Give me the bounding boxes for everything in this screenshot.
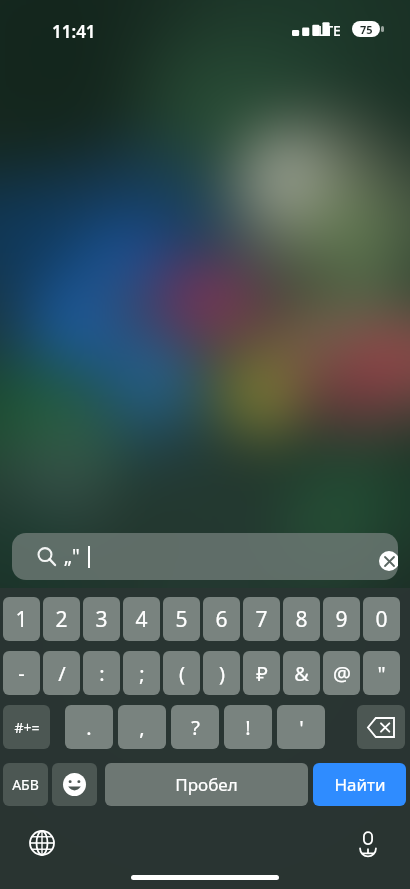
button[interactable]: 3 — [83, 597, 120, 641]
staticText: 9 — [335, 605, 348, 634]
button[interactable]: #+= — [3, 705, 50, 749]
button[interactable]: ? — [171, 705, 219, 749]
staticText: АБВ — [12, 775, 39, 794]
staticText: Пробел — [175, 773, 238, 796]
button[interactable]: 7 — [243, 597, 280, 641]
staticText: " — [377, 660, 386, 687]
staticText: & — [294, 660, 309, 687]
button[interactable]: Emoji — [52, 763, 97, 806]
staticText: ? — [191, 714, 200, 741]
button[interactable]: : — [83, 651, 120, 695]
button[interactable]: 5 — [163, 597, 200, 641]
staticText: ) — [219, 660, 225, 687]
staticText: „" — [64, 543, 80, 569]
staticText: #+= — [14, 718, 40, 737]
staticText: 5 — [175, 605, 188, 634]
button[interactable]: ( — [163, 651, 200, 695]
staticText: ' — [299, 714, 304, 741]
button[interactable]: " — [363, 651, 400, 695]
button[interactable]: ) — [203, 651, 240, 695]
staticText: 8 — [295, 605, 308, 634]
button[interactable]: ! — [224, 705, 272, 749]
button[interactable]: / — [43, 651, 80, 695]
staticText: ! — [245, 714, 251, 741]
button[interactable]: & — [283, 651, 320, 695]
button[interactable]: 9 — [323, 597, 360, 641]
staticText: ( — [179, 660, 185, 687]
button[interactable]: ₽ — [243, 651, 280, 695]
button[interactable]: ; — [123, 651, 160, 695]
staticText: : — [99, 660, 105, 687]
button[interactable]: 1 — [3, 597, 40, 641]
staticText: 0 — [375, 605, 388, 634]
button[interactable]: „" — [12, 533, 398, 580]
staticText: 3 — [95, 605, 108, 634]
button[interactable]: Voice input — [348, 823, 388, 863]
staticText: , — [139, 714, 145, 741]
staticText: LTE — [318, 21, 341, 40]
button[interactable]: Найти — [313, 763, 406, 806]
staticText: 2 — [55, 605, 68, 634]
staticText: 11:41 — [52, 20, 96, 43]
staticText: @ — [333, 660, 351, 687]
button[interactable]: 8 — [283, 597, 320, 641]
button[interactable]: 6 — [203, 597, 240, 641]
staticText: 6 — [215, 605, 228, 634]
staticText: Найти — [334, 773, 386, 796]
staticText: 4 — [135, 605, 148, 634]
button[interactable]: АБВ — [3, 763, 48, 806]
staticText: 75 — [360, 22, 373, 37]
button[interactable]: , — [118, 705, 166, 749]
button[interactable]: Backspace — [357, 705, 405, 749]
staticText: / — [58, 660, 66, 687]
button[interactable]: ' — [277, 705, 325, 749]
button[interactable]: - — [3, 651, 40, 695]
button[interactable]: . — [65, 705, 113, 749]
staticText: 1 — [15, 605, 28, 634]
button[interactable]: Change keyboard language — [22, 823, 62, 863]
staticText: - — [18, 660, 25, 687]
staticText: . — [86, 714, 92, 741]
staticText: ; — [139, 660, 145, 687]
button[interactable]: 0 — [363, 597, 400, 641]
staticText: ₽ — [256, 660, 268, 687]
staticText: 7 — [255, 605, 268, 634]
button[interactable]: Clear text — [379, 551, 398, 571]
button[interactable]: 4 — [123, 597, 160, 641]
button[interactable]: 2 — [43, 597, 80, 641]
button[interactable]: @ — [323, 651, 360, 695]
button[interactable]: Пробел — [105, 763, 308, 806]
